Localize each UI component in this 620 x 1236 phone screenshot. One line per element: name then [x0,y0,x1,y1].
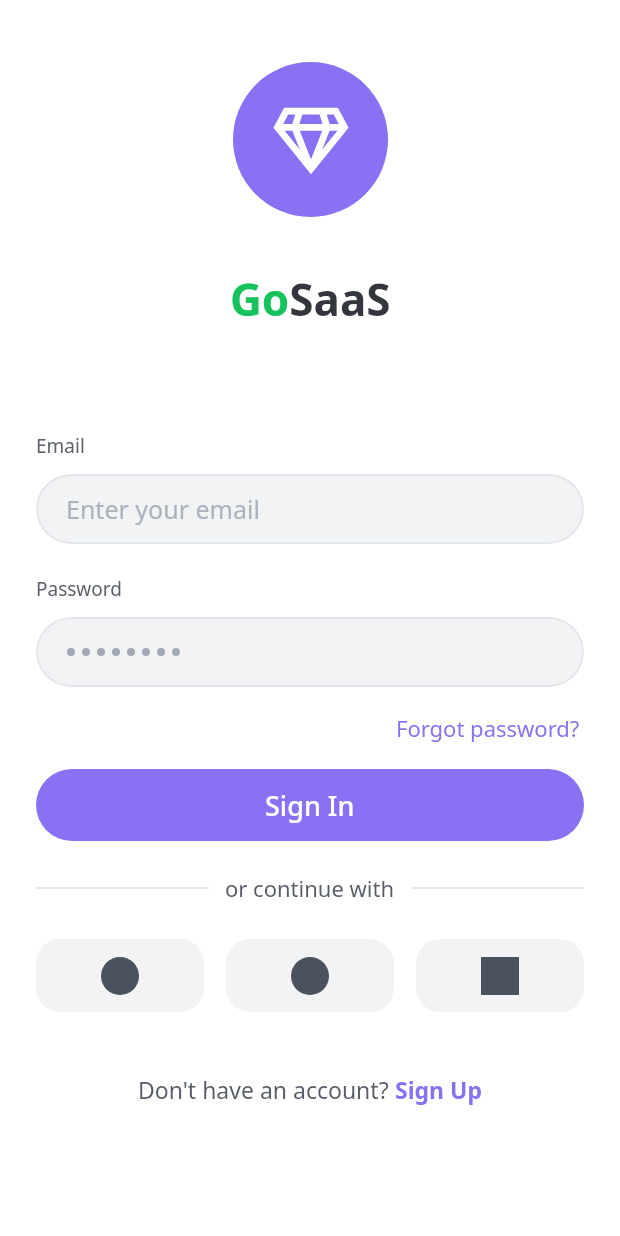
staticText: Password [36,576,122,602]
button[interactable]: Enter your email [36,474,584,544]
staticText: Sign In [265,787,355,824]
button[interactable]: Sign In [36,769,584,841]
staticText: or continue with [225,873,395,903]
button[interactable]: Sign in with Google [36,939,204,1012]
staticText: Sign Up [395,1074,482,1105]
staticText: GoSaaS [230,269,391,329]
button[interactable]: Sign Up [395,1074,482,1105]
staticText: Enter your email [66,492,260,526]
button[interactable]: Sign in with Microsoft [416,939,584,1012]
staticText: Email [36,433,85,459]
button[interactable]: Sign in with Apple [226,939,394,1012]
staticText: Forgot password? [396,713,580,743]
button[interactable]: Forgot password? [392,709,584,747]
button[interactable] [36,617,584,687]
staticText: Don't have an account? [138,1074,395,1105]
